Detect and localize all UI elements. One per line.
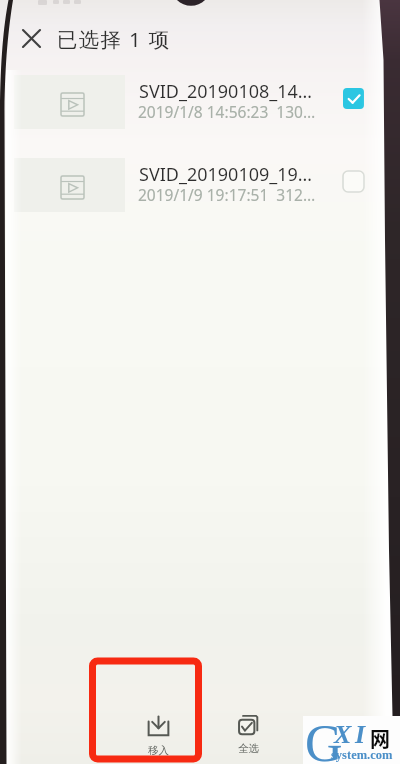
button[interactable]: Select item	[332, 77, 375, 120]
staticText: 2019/1/9 19:17:51 312…	[138, 184, 320, 205]
staticText: X	[334, 720, 352, 749]
button[interactable]: SVID_20190109_19…	[0, 158, 400, 212]
staticText: 移入	[148, 744, 169, 757]
staticText: 2019/1/8 14:56:23 130…	[138, 101, 320, 122]
staticText: 全选	[238, 742, 259, 755]
button[interactable]: Select item	[332, 160, 375, 203]
staticText: I	[355, 720, 366, 749]
staticText: SVID_20190109_19…	[139, 162, 315, 187]
button[interactable]: Close	[14, 21, 49, 56]
staticText: system.com	[331, 748, 393, 762]
button[interactable]: 移入	[132, 716, 184, 757]
button[interactable]: SVID_20190108_14…	[0, 75, 400, 129]
staticText: G	[305, 715, 343, 763]
staticText: 网	[370, 724, 390, 753]
staticText: SVID_20190108_14…	[139, 79, 315, 104]
button[interactable]: 全选	[222, 714, 274, 755]
staticText: 已选择 1 项	[57, 25, 171, 53]
